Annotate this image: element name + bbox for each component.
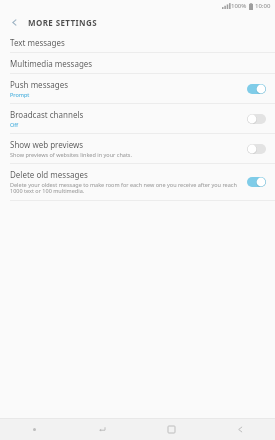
button[interactable]: Menu	[0, 419, 68, 440]
staticText: Delete your oldest message to make room …	[10, 181, 237, 195]
staticText: Push messages	[10, 79, 69, 90]
button[interactable]: Text messages	[0, 32, 275, 52]
staticText: Off	[10, 121, 19, 128]
staticText: 10:00	[255, 2, 271, 10]
staticText: Show previews of websites linked in your…	[10, 151, 132, 158]
staticText: Multimedia messages	[10, 58, 93, 69]
staticText: 100%	[231, 2, 247, 10]
button[interactable]: Off	[243, 141, 269, 157]
button[interactable]: Push messages	[0, 74, 275, 103]
staticText: Delete old messages	[10, 169, 88, 180]
button[interactable]: Show web previews	[0, 134, 275, 163]
button[interactable]: Home	[137, 419, 206, 440]
button[interactable]: Multimedia messages	[0, 53, 275, 73]
button[interactable]: Broadcast channels	[0, 104, 275, 133]
staticText: Text messages	[10, 37, 65, 48]
staticText: MORE SETTINGS	[28, 17, 97, 28]
button[interactable]: Navigate up	[0, 12, 28, 32]
button[interactable]: Hide keyboard	[68, 419, 137, 440]
button[interactable]: Delete old messages	[0, 164, 275, 200]
staticText: Prompt	[10, 91, 30, 98]
button[interactable]: Off	[243, 111, 269, 127]
staticText: Show web previews	[10, 139, 84, 150]
button[interactable]: On	[243, 81, 269, 97]
staticText: Broadcast channels	[10, 109, 84, 120]
button[interactable]: On	[243, 174, 269, 190]
